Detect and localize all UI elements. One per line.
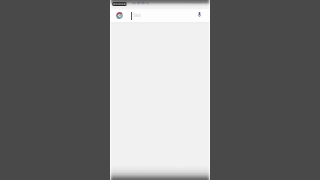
button[interactable]: Sea [110,0,210,22]
staticText: Sea [133,12,141,18]
button[interactable]: Voice search [198,12,201,17]
